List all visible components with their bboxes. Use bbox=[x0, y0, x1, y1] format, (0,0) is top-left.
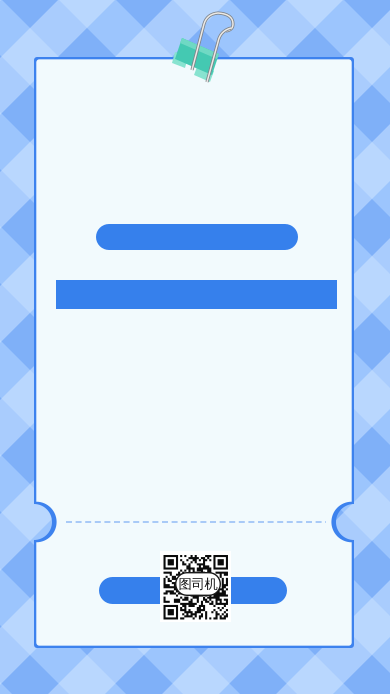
button[interactable]: Ticket title bbox=[0, 0, 390, 694]
staticText: 图司机 bbox=[178, 576, 217, 592]
button[interactable]: Ticket code bbox=[0, 0, 390, 694]
